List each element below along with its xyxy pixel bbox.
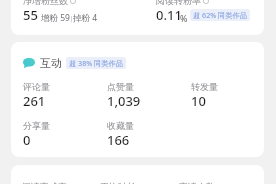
staticText: 收藏量 xyxy=(107,120,134,131)
staticText: 阅读转粉率 xyxy=(156,0,201,6)
staticText: 分享量 xyxy=(23,120,50,131)
other: 互动 xyxy=(23,58,35,68)
staticText: 转发量 xyxy=(191,81,218,92)
staticText: 超 62% 同类作品 xyxy=(193,10,247,20)
button[interactable]: 阅读完成率 xyxy=(11,165,264,184)
staticText: 掉粉 4 xyxy=(73,12,98,24)
staticText: 261 xyxy=(23,92,46,110)
button[interactable]: 净增粉丝数 xyxy=(11,0,264,35)
staticText: % xyxy=(180,12,188,24)
staticText: 166 xyxy=(107,131,130,149)
staticText: 55 xyxy=(23,6,38,24)
staticText: 净增粉丝数 xyxy=(23,0,68,6)
staticText: 增粉 59 xyxy=(41,12,70,24)
staticText: 0 xyxy=(23,131,31,149)
staticText: 0.11 xyxy=(156,6,182,24)
staticText: 互动 xyxy=(40,56,62,70)
staticText: 超 38% 同类作品 xyxy=(69,58,123,68)
staticText: 平均时长 xyxy=(100,181,136,184)
staticText: 10 xyxy=(191,92,206,110)
staticText: 1,039 xyxy=(107,92,141,110)
button[interactable]: 互动 xyxy=(23,56,126,70)
staticText: 点赞量 xyxy=(107,81,134,92)
staticText: 完读人数 xyxy=(179,181,215,184)
staticText: 阅读完成率 xyxy=(22,181,67,184)
staticText: 评论量 xyxy=(23,81,50,92)
